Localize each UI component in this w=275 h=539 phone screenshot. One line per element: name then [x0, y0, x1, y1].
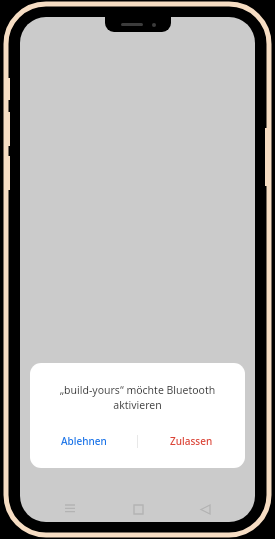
button[interactable]: Zulassen [138, 430, 245, 452]
button[interactable]: Home [121, 496, 155, 522]
staticText: Ablehnen [61, 434, 107, 448]
button[interactable]: Ablehnen [30, 430, 137, 452]
staticText: „build-yours“ möchte Bluetooth aktiviere… [42, 383, 233, 412]
staticText: Zulassen [170, 434, 213, 448]
button[interactable]: Recents [53, 496, 87, 522]
button[interactable]: Back [188, 496, 222, 522]
